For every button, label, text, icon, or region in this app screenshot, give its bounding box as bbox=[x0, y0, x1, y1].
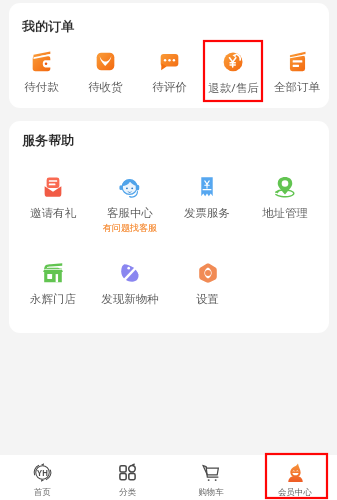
staticText: 邀请有礼 bbox=[30, 206, 76, 220]
staticText: 发票服务 bbox=[184, 206, 230, 220]
button[interactable]: 待付款 bbox=[24, 51, 59, 94]
staticText: 设置 bbox=[196, 292, 219, 306]
staticText: 永辉门店 bbox=[30, 292, 76, 306]
staticText: 会员中心 bbox=[278, 487, 312, 498]
staticText: 购物车 bbox=[198, 487, 224, 498]
button[interactable]: 邀请有礼 bbox=[30, 176, 76, 220]
staticText: 地址管理 bbox=[262, 206, 308, 220]
staticText: 全部订单 bbox=[274, 80, 320, 94]
button[interactable]: 全部订单 bbox=[274, 51, 320, 94]
staticText: 退款/售后 bbox=[208, 80, 259, 96]
staticText: YH bbox=[37, 467, 49, 478]
button[interactable]: 待评价 bbox=[152, 51, 187, 94]
button[interactable]: 客服中心 bbox=[103, 176, 157, 233]
button[interactable]: 退款/售后 bbox=[208, 51, 259, 96]
staticText: 发现新物种 bbox=[101, 292, 159, 306]
staticText: 待评价 bbox=[152, 80, 187, 94]
button[interactable]: 待收货 bbox=[88, 51, 123, 94]
staticText: 分类 bbox=[119, 487, 136, 498]
button[interactable]: YH bbox=[33, 463, 52, 498]
button[interactable]: 发票服务 bbox=[184, 176, 230, 220]
staticText: 首页 bbox=[34, 487, 51, 498]
staticText: 待收货 bbox=[88, 80, 123, 94]
button[interactable]: 永辉门店 bbox=[30, 262, 76, 306]
button[interactable]: 设置 bbox=[196, 262, 219, 306]
button[interactable]: 会员中心 bbox=[278, 463, 312, 498]
button[interactable]: 发现新物种 bbox=[101, 262, 159, 306]
staticText: 客服中心 bbox=[107, 206, 153, 220]
button[interactable]: 购物车 bbox=[198, 463, 224, 498]
staticText: 服务帮助 bbox=[22, 132, 74, 148]
staticText: 待付款 bbox=[24, 80, 59, 94]
button[interactable]: 地址管理 bbox=[262, 176, 308, 220]
staticText: 我的订单 bbox=[22, 18, 74, 34]
button[interactable]: 分类 bbox=[118, 463, 137, 498]
staticText: 有问题找客服 bbox=[103, 222, 157, 233]
